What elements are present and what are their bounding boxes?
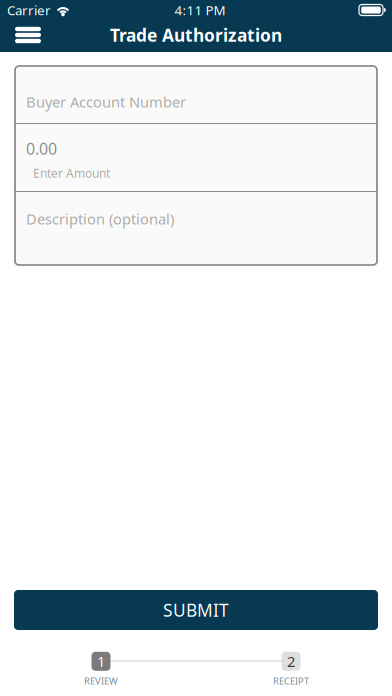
staticText: Enter Amount	[33, 165, 110, 181]
staticText: Trade Authorization	[110, 23, 282, 46]
staticText: Description (optional)	[26, 209, 174, 228]
staticText: Buyer Account Number	[26, 92, 186, 111]
button[interactable]: Buyer Account Number	[15, 66, 377, 123]
staticText: SUBMIT	[163, 598, 229, 621]
button[interactable]: Menu	[7, 20, 49, 50]
staticText: RECEIPT	[273, 675, 309, 687]
staticText: 1	[97, 652, 105, 671]
staticText: REVIEW	[84, 675, 118, 687]
staticText: 2	[287, 652, 295, 671]
staticText: Carrier	[7, 1, 51, 19]
staticText: 4:11 PM	[174, 1, 225, 19]
button[interactable]: Description (optional)	[15, 192, 377, 265]
button[interactable]: SUBMIT	[14, 590, 378, 630]
button[interactable]: 0.00	[15, 124, 377, 191]
staticText: 0.00	[26, 138, 57, 159]
